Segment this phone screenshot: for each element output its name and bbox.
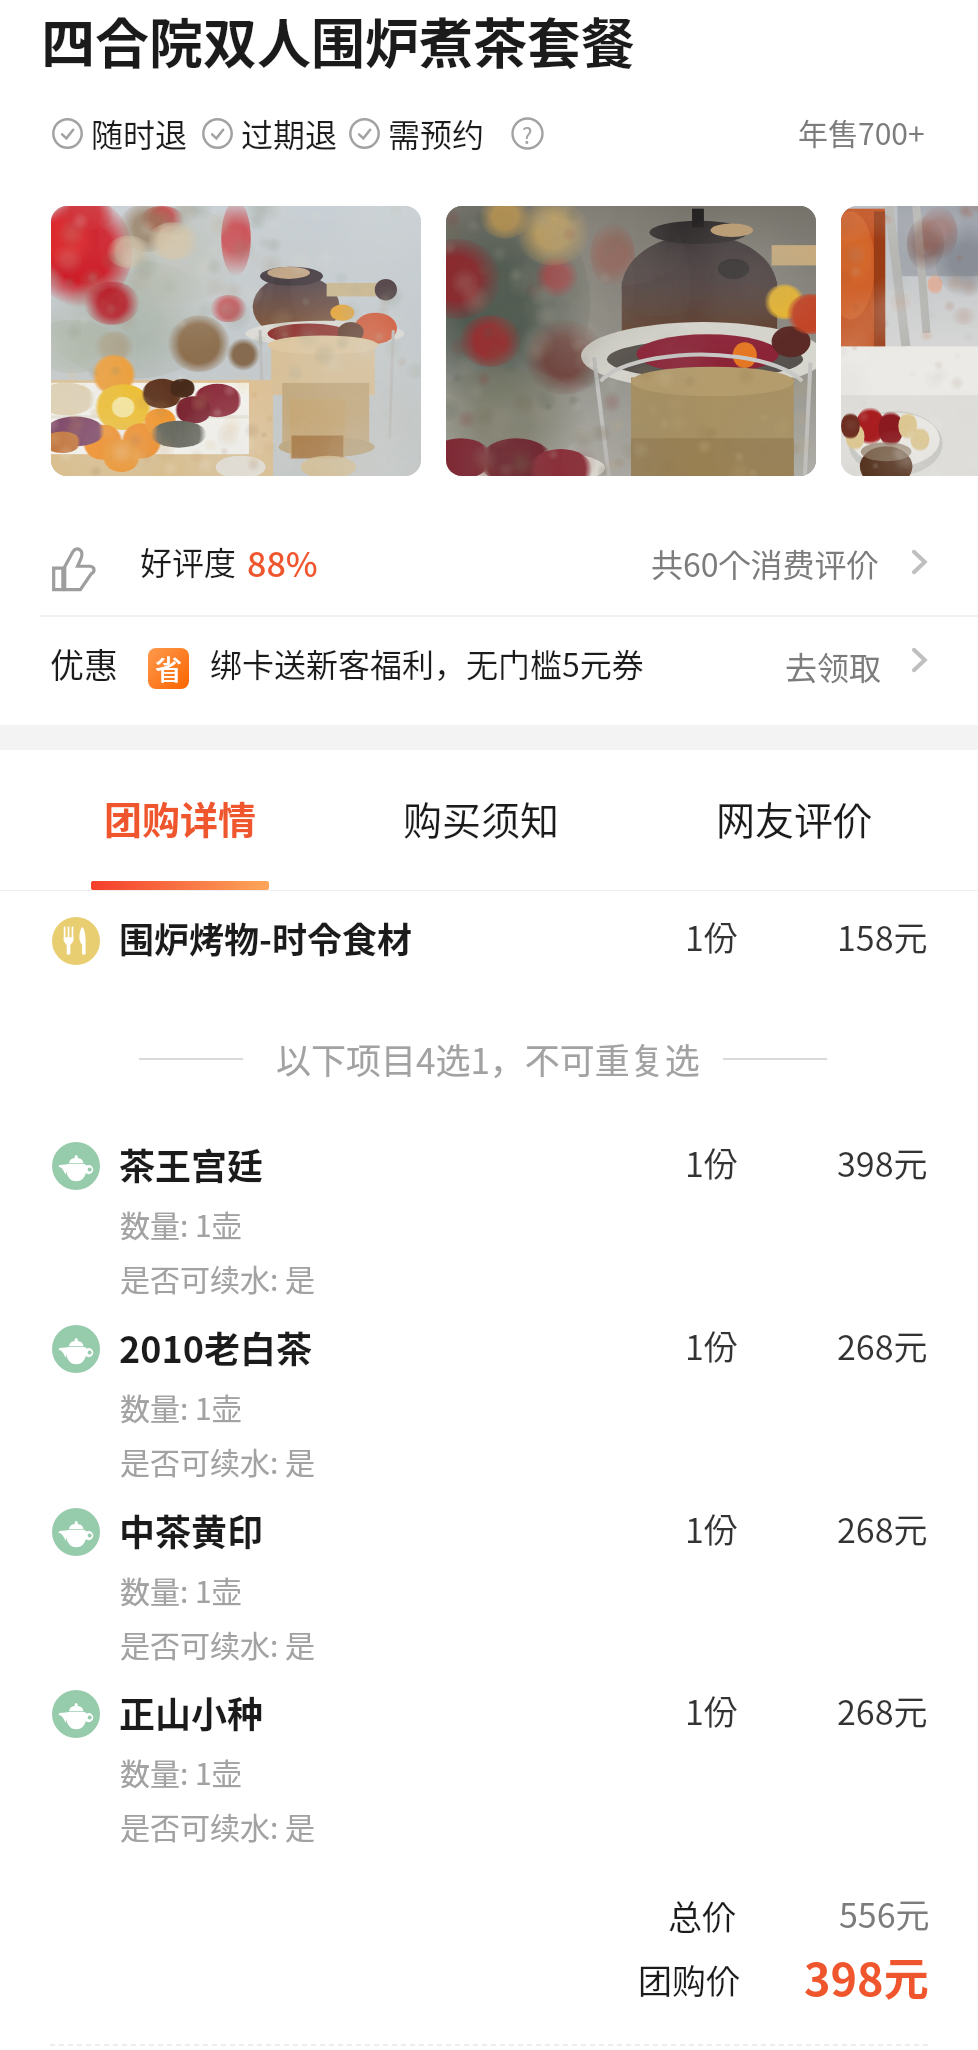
staticText: 是否可续水: 是 xyxy=(120,1622,316,1665)
staticText: 数量: 1壶 xyxy=(120,1385,242,1428)
staticText: 数量: 1壶 xyxy=(120,1750,242,1793)
staticText: 数量: 1壶 xyxy=(120,1568,242,1611)
button[interactable]: 2010老白茶 xyxy=(0,1325,978,1485)
staticText: 好评度 xyxy=(140,538,237,584)
staticText: 158元 xyxy=(837,912,928,961)
staticText: 556元 xyxy=(839,1889,930,1938)
staticText: 茶王宫廷 xyxy=(119,1138,264,1190)
button[interactable]: 随时退 xyxy=(52,110,188,156)
staticText: 数量: 1壶 xyxy=(120,1202,242,1245)
button[interactable]: 团购详情 xyxy=(35,750,325,890)
staticText: 268元 xyxy=(837,1686,928,1735)
staticText: 团购价 xyxy=(638,1955,740,2004)
button[interactable]: 围炉烤物-时令食材 xyxy=(0,915,978,967)
other: 好评 xyxy=(50,546,96,592)
staticText: 是否可续水: 是 xyxy=(120,1804,316,1847)
staticText: 围炉烤物-时令食材 xyxy=(119,912,412,963)
staticText: 四合院双人围炉煮茶套餐 xyxy=(41,1,635,79)
staticText: 398元 xyxy=(804,1944,929,2009)
staticText: 团购详情 xyxy=(104,790,257,840)
staticText: 省 xyxy=(155,649,182,688)
button[interactable]: 中茶黄印 xyxy=(0,1508,978,1668)
staticText: 1份 xyxy=(685,1686,738,1735)
staticText: 正山小种 xyxy=(119,1686,264,1738)
staticText: 随时退 xyxy=(91,110,188,156)
button[interactable]: 帮助说明 xyxy=(511,117,544,150)
other: 查看全部评价 xyxy=(903,546,935,578)
staticText: 1份 xyxy=(685,1138,738,1187)
staticText: 购买须知 xyxy=(403,790,560,840)
staticText: 398元 xyxy=(837,1138,928,1187)
other: 去领取优惠券 xyxy=(903,644,935,676)
staticText: 1份 xyxy=(685,1321,738,1370)
button[interactable]: 正山小种 xyxy=(0,1690,978,1850)
button[interactable]: 网友评价 xyxy=(649,750,939,890)
staticText: 年售700+ xyxy=(798,110,925,153)
button[interactable]: 好评 xyxy=(0,520,978,616)
staticText: 1份 xyxy=(685,1504,738,1553)
staticText: 1份 xyxy=(685,912,738,961)
button[interactable]: 购买须知 xyxy=(335,750,625,890)
staticText: 优惠 xyxy=(50,639,118,688)
button[interactable]: 过期退 xyxy=(202,110,338,156)
staticText: 是否可续水: 是 xyxy=(120,1439,316,1482)
staticText: 去领取 xyxy=(785,643,882,689)
button[interactable]: 套餐图片 2 xyxy=(446,206,816,476)
button[interactable]: 需预约 xyxy=(349,110,485,156)
button[interactable]: 套餐图片 3 xyxy=(841,206,978,476)
staticText: 268元 xyxy=(837,1504,928,1553)
staticText: 以下项目4选1，不可重复选 xyxy=(276,1033,700,1084)
button[interactable]: 茶王宫廷 xyxy=(0,1142,978,1302)
staticText: 过期退 xyxy=(241,110,338,156)
staticText: 2010老白茶 xyxy=(119,1321,312,1373)
staticText: 总价 xyxy=(668,1891,736,1940)
staticText: ? xyxy=(522,118,533,150)
staticText: 共60个消费评价 xyxy=(651,540,879,586)
staticText: 88% xyxy=(247,538,318,587)
staticText: 是否可续水: 是 xyxy=(120,1256,316,1299)
staticText: 绑卡送新客福利，无门槛5元券 xyxy=(210,640,644,686)
button[interactable]: 优惠 xyxy=(0,617,978,714)
staticText: 需预约 xyxy=(388,110,485,156)
button[interactable]: 套餐图片 1 xyxy=(51,206,421,476)
staticText: 中茶黄印 xyxy=(119,1504,264,1556)
staticText: 268元 xyxy=(837,1321,928,1370)
staticText: 网友评价 xyxy=(716,790,873,840)
